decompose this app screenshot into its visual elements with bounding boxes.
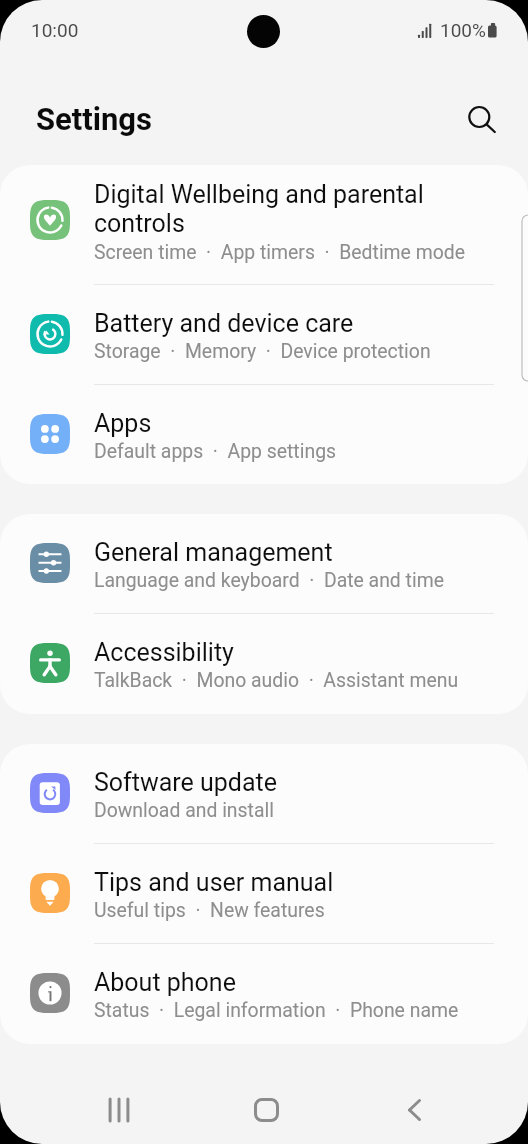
staticText: Apps (94, 409, 152, 438)
staticText: Settings (36, 101, 153, 137)
button[interactable]: Software update (0, 744, 528, 844)
button[interactable]: Apps (0, 385, 528, 484)
staticText: Digital Wellbeing and parental controls (94, 180, 424, 238)
button[interactable]: Home (192, 1076, 340, 1144)
staticText: 100% (440, 19, 486, 41)
staticText: About phone (94, 968, 236, 997)
staticText: Storage · Memory · Device protection (94, 340, 431, 363)
button[interactable]: Accessibility (0, 614, 528, 714)
staticText: Accessibility (94, 638, 234, 667)
staticText: Tips and user manual (94, 868, 334, 897)
button[interactable]: General management (0, 514, 528, 614)
staticText: TalkBack · Mono audio · Assistant menu (94, 669, 459, 692)
staticText: General management (94, 538, 333, 567)
button[interactable]: Battery and device care (0, 285, 528, 385)
button[interactable]: Recents (45, 1076, 192, 1144)
staticText: Status · Legal information · Phone name (94, 999, 459, 1022)
button[interactable]: Tips and user manual (0, 844, 528, 944)
staticText: Default apps · App settings (94, 440, 337, 463)
staticText: Software update (94, 768, 278, 797)
button[interactable]: Digital Wellbeing and parental controls (0, 165, 528, 285)
button[interactable]: Back (340, 1076, 488, 1144)
staticText: Useful tips · New features (94, 899, 325, 922)
button[interactable]: About phone (0, 944, 528, 1044)
staticText: Battery and device care (94, 309, 354, 338)
staticText: Download and install (94, 799, 274, 822)
staticText: Screen time · App timers · Bedtime mode (94, 241, 465, 264)
button[interactable]: Search (461, 99, 509, 147)
staticText: 10:00 (31, 19, 79, 41)
staticText: Language and keyboard · Date and time (94, 569, 444, 592)
